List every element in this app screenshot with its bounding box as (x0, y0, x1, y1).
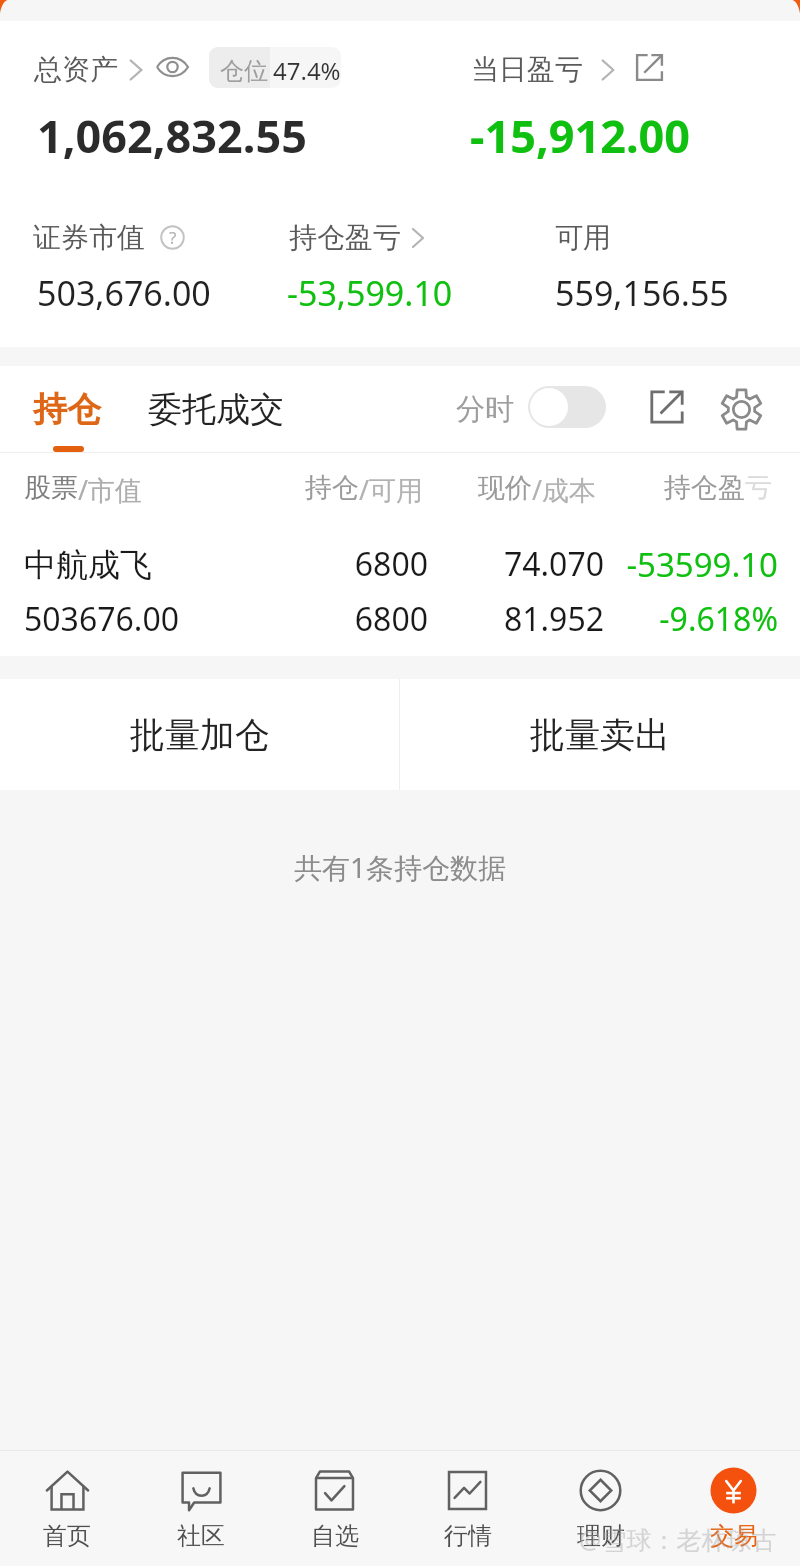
staticText: 持仓盈亏 (289, 220, 401, 255)
staticText: 中航成飞 (24, 545, 152, 585)
staticText: ? (169, 226, 177, 249)
staticText: 559,156.55 (555, 270, 729, 316)
staticText: 证券市值 (33, 220, 145, 255)
staticText: -15,912.00 (470, 105, 691, 166)
button[interactable]: 中航成飞 (0, 511, 800, 651)
button[interactable]: 交易 (667, 1451, 800, 1566)
button[interactable]: 证券市值 (33, 220, 185, 255)
other: Help (160, 225, 185, 250)
button[interactable]: Toggle intraday chart (528, 386, 606, 428)
button[interactable]: Hide assets (156, 54, 189, 80)
button[interactable]: 行情 (401, 1451, 534, 1566)
staticText: 交易 (710, 1521, 758, 1551)
staticText: 81.952 (444, 597, 604, 641)
staticText: 6800 (228, 542, 428, 586)
button[interactable]: 总资产 (34, 52, 146, 87)
staticText: 6800 (228, 597, 428, 641)
staticText: 分时 (456, 391, 514, 428)
staticText: 现价 (478, 471, 532, 505)
button[interactable]: 社区 (134, 1451, 268, 1566)
staticText: 503676.00 (24, 597, 180, 641)
staticText: 可用 (555, 220, 611, 255)
button[interactable]: Settings (720, 388, 763, 431)
staticText: 社区 (177, 1521, 225, 1551)
staticText: -9.618% (598, 597, 778, 641)
staticText: -53,599.10 (287, 270, 453, 316)
button[interactable]: 理财 (534, 1451, 667, 1566)
staticText: -53599.10 (598, 542, 778, 587)
staticText: 持仓 (305, 471, 359, 505)
button[interactable]: 持仓盈亏 (289, 220, 428, 255)
staticText: 批量卖出 (530, 713, 670, 757)
button[interactable]: 仓位 (209, 47, 341, 88)
button[interactable]: 首页 (0, 1451, 134, 1566)
staticText: /成本 (532, 471, 597, 508)
staticText: 当日盈亏 (471, 52, 583, 87)
staticText: 自选 (311, 1521, 359, 1551)
staticText: @雪球：老林琼古 (579, 1522, 777, 1556)
staticText: 理财 (577, 1521, 625, 1551)
staticText: 持仓盈 (664, 471, 745, 505)
button[interactable]: 批量加仓 (0, 679, 399, 790)
staticText: 仓位 (220, 56, 268, 86)
staticText: /可用 (359, 471, 424, 508)
staticText: 总资产 (34, 52, 118, 87)
staticText: 首页 (43, 1521, 91, 1551)
button[interactable]: 当日盈亏 (471, 52, 618, 87)
staticText: 持仓 (33, 388, 101, 431)
staticText: 共有1条持仓数据 (0, 848, 800, 886)
staticText: 批量加仓 (130, 713, 270, 757)
staticText: 47.4% (273, 54, 341, 87)
staticText: 行情 (444, 1521, 492, 1551)
staticText: 74.070 (444, 542, 604, 586)
button[interactable]: 委托成交 (148, 388, 284, 431)
staticText: 503,676.00 (37, 270, 211, 316)
staticText: 委托成交 (148, 388, 284, 431)
staticText: 1,062,832.55 (37, 105, 307, 166)
button[interactable]: Open detail (634, 52, 665, 83)
button[interactable]: 自选 (268, 1451, 401, 1566)
staticText: 股票 (24, 471, 78, 505)
button[interactable]: 批量卖出 (400, 679, 800, 790)
button[interactable]: 持仓 (33, 388, 101, 431)
button[interactable]: Open in new window (648, 388, 686, 426)
staticText: /市值 (78, 471, 143, 508)
staticText: 亏 (745, 471, 772, 505)
